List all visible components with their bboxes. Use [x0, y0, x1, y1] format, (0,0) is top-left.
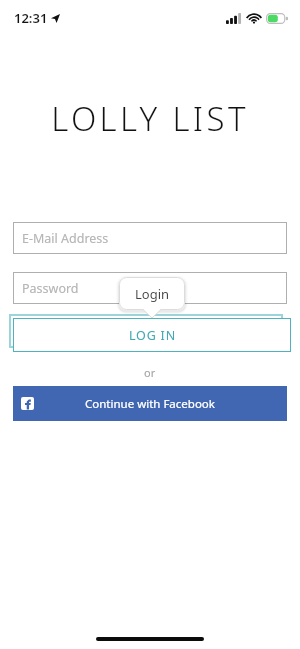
- button[interactable]: Password: [13, 272, 287, 304]
- staticText: Continue with Facebook: [85, 396, 215, 412]
- staticText: E-Mail Address: [22, 230, 109, 247]
- staticText: 12:31: [14, 9, 48, 27]
- staticText: Login: [135, 285, 170, 303]
- button[interactable]: Continue with Facebook: [13, 386, 287, 421]
- staticText: LOLLY LIST: [51, 96, 249, 141]
- staticText: LOG IN: [129, 327, 176, 344]
- button[interactable]: LOG IN: [13, 318, 291, 352]
- staticText: or: [144, 365, 156, 380]
- staticText: Password: [22, 280, 79, 297]
- button[interactable]: E-Mail Address: [13, 222, 287, 254]
